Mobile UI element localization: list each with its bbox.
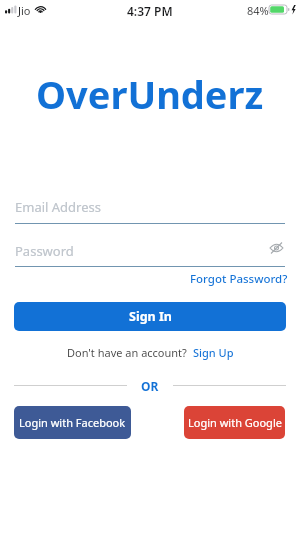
staticText: Email Address xyxy=(15,198,101,216)
button[interactable]: Forgot Password? xyxy=(190,271,288,287)
button[interactable]: Login with Facebook xyxy=(14,406,131,439)
button[interactable]: Sign In xyxy=(14,302,286,331)
staticText: Jio xyxy=(18,3,31,18)
staticText: OR xyxy=(141,378,159,394)
button[interactable]: Email Address xyxy=(15,194,285,225)
button[interactable]: Password xyxy=(15,238,285,268)
staticText: 84% xyxy=(247,3,269,18)
button[interactable]: Sign Up xyxy=(193,345,234,360)
staticText: OverUnderz xyxy=(36,68,264,114)
button[interactable] xyxy=(269,243,284,253)
staticText: Sign Up xyxy=(193,345,234,360)
staticText: Don't have an account? xyxy=(67,345,193,360)
staticText: Forgot Password? xyxy=(190,271,288,287)
staticText: 4:37 PM xyxy=(127,3,173,19)
staticText: Sign In xyxy=(129,308,172,325)
staticText: Password xyxy=(15,242,74,260)
button[interactable]: Login with Google xyxy=(184,406,285,439)
staticText: Login with Facebook xyxy=(19,415,126,430)
staticText: Login with Google xyxy=(188,415,282,430)
